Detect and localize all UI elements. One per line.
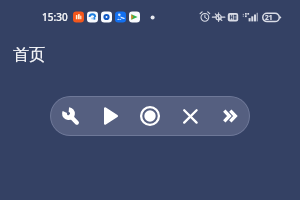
button[interactable]: Build bbox=[50, 96, 90, 136]
staticText: 21 bbox=[265, 13, 273, 22]
button[interactable]: Close bbox=[170, 96, 210, 136]
button[interactable]: More bbox=[210, 96, 250, 136]
button[interactable]: Record bbox=[130, 96, 170, 136]
staticText: 15:30 bbox=[42, 10, 68, 24]
staticText: 首页 bbox=[13, 45, 45, 65]
button[interactable]: Play bbox=[90, 96, 130, 136]
